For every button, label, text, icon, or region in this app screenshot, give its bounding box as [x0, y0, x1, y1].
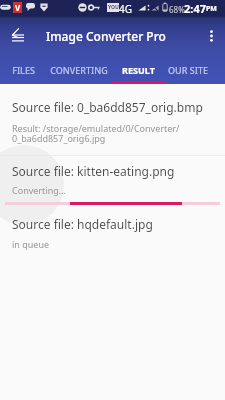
- staticText: RESULT: [122, 64, 155, 76]
- button[interactable]: Source file: kitten-eating.png: [0, 156, 225, 202]
- button[interactable]: OUR SITE: [165, 56, 211, 84]
- staticText: 4G: [119, 2, 132, 16]
- staticText: OUR SITE: [168, 64, 208, 76]
- button[interactable]: RESULT: [112, 56, 165, 84]
- button[interactable]: More options: [197, 16, 225, 56]
- staticText: Source file: 0_ba6dd857_orig.bmp: [12, 99, 203, 115]
- staticText: PM: [206, 4, 217, 14]
- button[interactable]: Source file: 0_ba6dd857_orig.bmp: [0, 84, 225, 155]
- staticText: Result: /storage/emulated/0/Converter/ 0…: [12, 122, 180, 145]
- staticText: 2:47: [184, 1, 206, 16]
- button[interactable]: CONVERTING: [46, 56, 112, 84]
- staticText: YOU: [108, 4, 119, 11]
- staticText: Image Converter Pro: [46, 28, 166, 44]
- button[interactable]: FILES: [0, 56, 46, 84]
- staticText: Converting...: [12, 184, 66, 196]
- staticText: CONVERTING: [50, 64, 108, 76]
- staticText: in queue: [12, 238, 50, 250]
- staticText: FILES: [12, 64, 35, 76]
- staticText: Source file: hqdefault.jpg: [12, 216, 153, 232]
- button[interactable]: Source file: hqdefault.jpg: [0, 205, 225, 250]
- button[interactable]: Navigate up: [0, 16, 36, 56]
- staticText: V: [15, 2, 21, 13]
- staticText: Source file: kitten-eating.png: [12, 163, 175, 179]
- staticText: 68%: [169, 4, 185, 15]
